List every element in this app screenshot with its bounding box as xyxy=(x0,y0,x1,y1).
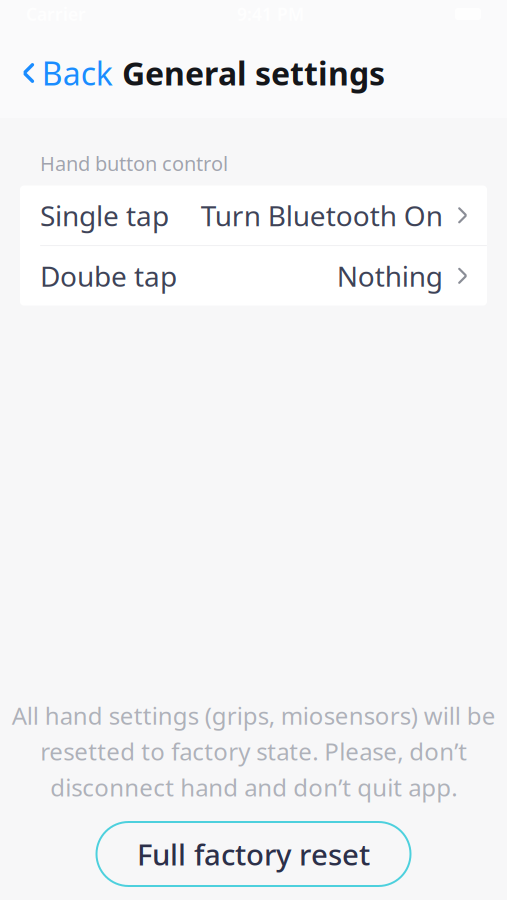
staticText: disconnect hand and don’t quit app. xyxy=(50,771,457,803)
staticText: Nothing xyxy=(337,257,443,294)
staticText: Full factory reset xyxy=(137,834,370,873)
staticText: Single tap xyxy=(40,197,169,234)
staticText: General settings xyxy=(122,52,385,94)
staticText: All hand settings (grips, miosensors) wi… xyxy=(11,699,495,731)
staticText: Hand button control xyxy=(40,150,228,177)
button[interactable]: Back xyxy=(0,42,113,104)
button[interactable]: Doube tap xyxy=(20,246,487,306)
staticText: Turn Bluetooth On xyxy=(201,197,443,234)
staticText: Back xyxy=(42,52,113,94)
button[interactable]: Full factory reset xyxy=(96,822,410,886)
staticText: Doube tap xyxy=(40,257,177,294)
button[interactable]: Single tap xyxy=(20,186,487,245)
staticText: resetted to factory state. Please, don’t xyxy=(40,735,467,767)
